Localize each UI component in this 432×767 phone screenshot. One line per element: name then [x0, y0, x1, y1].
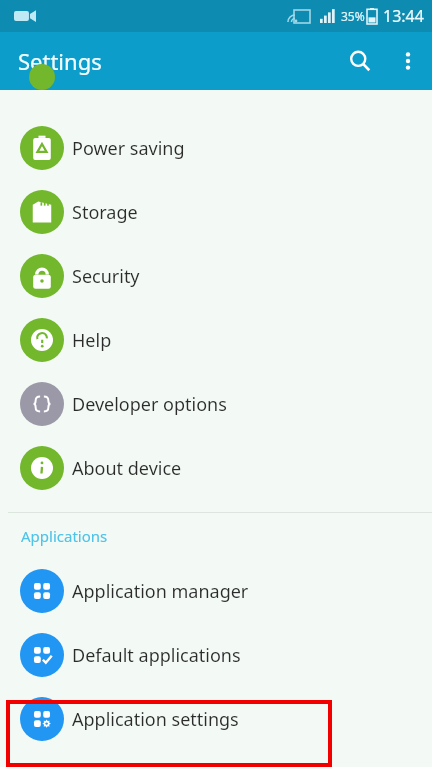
- staticText: Storage: [72, 200, 138, 225]
- staticText: Applications: [21, 526, 108, 546]
- button[interactable]: Application settings: [0, 687, 432, 751]
- button[interactable]: Storage: [0, 180, 432, 244]
- button[interactable]: Application manager: [0, 559, 432, 623]
- staticText: Settings: [18, 46, 102, 76]
- button[interactable]: Developer options: [0, 372, 432, 436]
- button[interactable]: Security: [0, 244, 432, 308]
- button[interactable]: More options: [384, 37, 432, 85]
- staticText: Power saving: [72, 136, 185, 161]
- staticText: 35%: [341, 8, 365, 24]
- staticText: Security: [72, 264, 140, 289]
- staticText: 13:44: [383, 5, 424, 27]
- button[interactable]: Power saving: [0, 116, 432, 180]
- staticText: Developer options: [72, 392, 227, 417]
- button[interactable]: Default applications: [0, 623, 432, 687]
- button[interactable]: Search: [336, 37, 384, 85]
- staticText: Application settings: [72, 707, 239, 732]
- staticText: About device: [72, 456, 182, 481]
- staticText: Default applications: [72, 643, 241, 668]
- button[interactable]: About device: [0, 436, 432, 500]
- staticText: Help: [72, 328, 112, 353]
- button[interactable]: Help: [0, 308, 432, 372]
- staticText: Application manager: [72, 579, 249, 604]
